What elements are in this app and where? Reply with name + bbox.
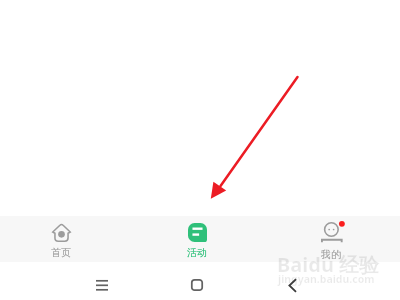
button[interactable]: Recents (85, 268, 119, 300)
button[interactable]: Back (275, 268, 309, 300)
button[interactable]: 首页 (0, 216, 130, 262)
button[interactable]: 活动 (130, 216, 265, 262)
staticText: 活动 (187, 246, 207, 259)
button[interactable]: 我的 (265, 216, 400, 262)
staticText: jingyan.baidu.com (278, 272, 375, 286)
staticText: 我的 (321, 248, 341, 261)
button[interactable]: Home (180, 268, 214, 300)
staticText: 首页 (51, 246, 71, 259)
staticText: Baidu 经验 (277, 251, 380, 278)
